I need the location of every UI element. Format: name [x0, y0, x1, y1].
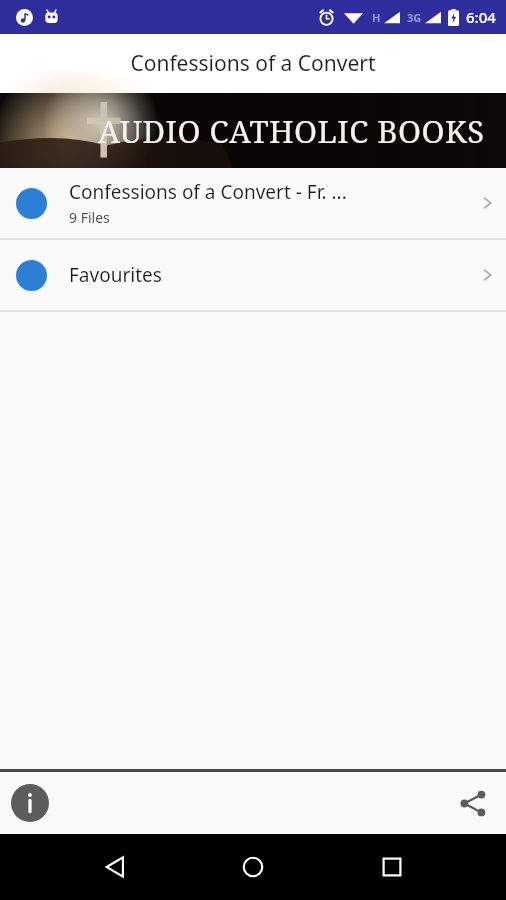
button[interactable]: Favourites: [0, 240, 506, 310]
button[interactable]: Back: [91, 843, 139, 891]
button[interactable]: Confessions of a Convert - Fr. ...: [0, 168, 506, 238]
button[interactable]: Recent apps: [368, 843, 416, 891]
staticText: Confessions of a Convert - Fr. ...: [69, 179, 347, 205]
staticText: Favourites: [69, 262, 162, 288]
staticText: 6:04: [466, 7, 496, 27]
staticText: AUDIO CATHOLIC BOOKS: [98, 110, 485, 152]
staticText: H: [372, 10, 381, 25]
button[interactable]: Information: [10, 783, 50, 823]
staticText: 3G: [407, 10, 422, 25]
button[interactable]: Share: [450, 781, 494, 825]
staticText: 9 Files: [69, 208, 110, 227]
staticText: Confessions of a Convert: [130, 49, 376, 78]
button[interactable]: Home: [229, 843, 277, 891]
